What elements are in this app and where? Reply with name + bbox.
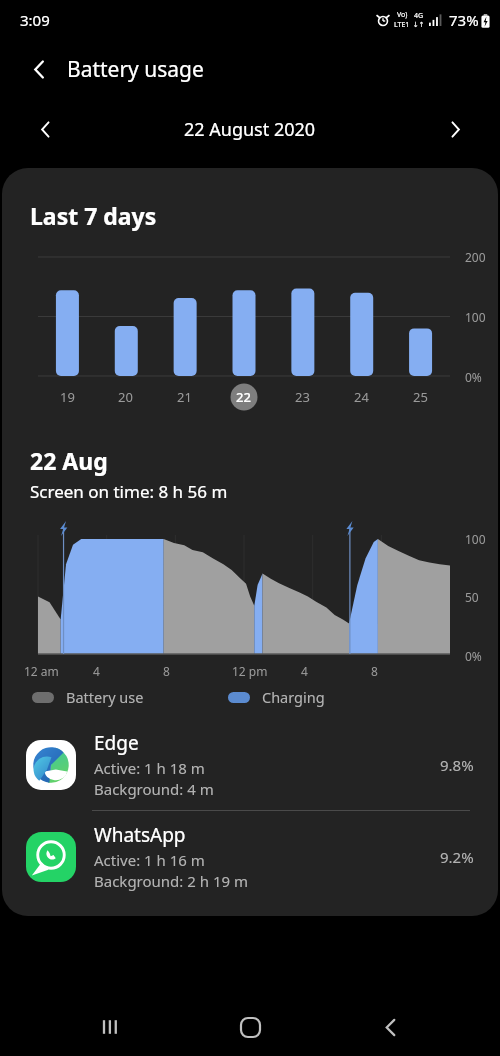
staticText: 100 xyxy=(465,309,486,325)
staticText: Background: 2 h 19 m xyxy=(94,871,248,891)
staticText: 4 xyxy=(93,663,100,679)
staticText: 22 xyxy=(236,388,251,406)
staticText: 200 xyxy=(465,249,486,265)
staticText: 19 xyxy=(60,388,75,406)
staticText: 25 xyxy=(413,388,428,406)
staticText: 22 August 2020 xyxy=(184,117,316,142)
staticText: 23 xyxy=(295,388,310,406)
staticText: 9.8% xyxy=(440,755,474,775)
staticText: Battery usage xyxy=(67,55,204,84)
staticText: 3:09 xyxy=(20,10,50,30)
button[interactable]: Previous day xyxy=(28,112,62,146)
staticText: Battery use xyxy=(66,687,144,707)
staticText: Active: 1 h 16 m xyxy=(94,850,205,870)
staticText: 4G xyxy=(414,11,424,21)
staticText: 4 xyxy=(301,663,308,679)
button[interactable]: Back xyxy=(20,50,58,88)
staticText: 21 xyxy=(177,388,192,406)
staticText: 50 xyxy=(465,589,479,605)
staticText: 0% xyxy=(465,648,482,664)
staticText: 100 xyxy=(465,531,486,547)
staticText: Background: 4 m xyxy=(94,779,214,799)
staticText: ↓↑ xyxy=(413,21,425,29)
staticText: Edge xyxy=(94,730,139,756)
staticText: 12 pm xyxy=(232,663,268,679)
staticText: LTE1 xyxy=(394,20,410,30)
staticText: Last 7 days xyxy=(30,200,157,231)
staticText: 8 xyxy=(163,663,170,679)
button[interactable]: Next day xyxy=(438,112,472,146)
staticText: 20 xyxy=(118,388,133,406)
staticText: 22 Aug xyxy=(30,445,108,476)
staticText: Screen on time: 8 h 56 m xyxy=(30,480,228,503)
staticText: 9.2% xyxy=(440,847,474,867)
button[interactable]: Home xyxy=(221,998,279,1056)
staticText: Charging xyxy=(262,687,325,707)
staticText: 73% xyxy=(449,10,479,30)
button[interactable]: Recents xyxy=(82,998,140,1056)
staticText: 12 am xyxy=(24,663,59,679)
staticText: WhatsApp xyxy=(94,822,186,848)
button[interactable]: Back xyxy=(361,998,419,1056)
staticText: Vo) xyxy=(397,10,408,20)
staticText: Active: 1 h 18 m xyxy=(94,758,205,778)
button[interactable]: WhatsApp xyxy=(2,811,498,902)
staticText: 0% xyxy=(465,369,482,385)
staticText: 8 xyxy=(371,663,378,679)
button[interactable]: Edge xyxy=(2,719,498,810)
staticText: 24 xyxy=(354,388,369,406)
